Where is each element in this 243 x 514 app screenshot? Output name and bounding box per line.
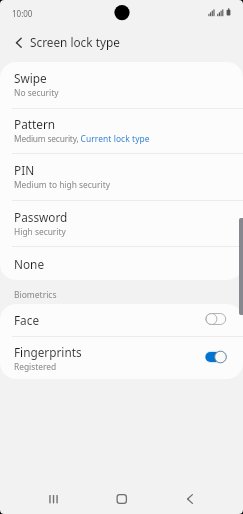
button[interactable]: PIN — [0, 154, 243, 200]
staticText: Medium security, Current lock type — [14, 133, 150, 144]
button[interactable]: Recent apps — [40, 486, 68, 514]
staticText: Pattern — [14, 116, 56, 132]
staticText: 10:00 — [12, 8, 33, 19]
button[interactable]: Swipe — [0, 62, 243, 108]
staticText: Screen lock type — [30, 34, 120, 50]
button[interactable]: None — [0, 247, 243, 280]
button[interactable]: Back — [176, 486, 204, 514]
staticText: Registered — [14, 361, 57, 372]
button[interactable]: Pattern — [0, 109, 243, 153]
staticText: Face — [14, 312, 40, 328]
button[interactable]: Navigate up — [7, 31, 31, 55]
button[interactable]: Home — [108, 486, 136, 514]
staticText: High security — [14, 226, 66, 237]
button[interactable]: Face — [0, 304, 243, 336]
staticText: Swipe — [14, 70, 47, 86]
staticText: No security — [14, 87, 59, 98]
staticText: Biometrics — [14, 289, 57, 301]
button[interactable]: Fingerprints — [0, 337, 243, 379]
staticText: Password — [14, 209, 68, 225]
staticText: Medium to high security — [14, 179, 110, 190]
staticText: Fingerprints — [14, 344, 82, 360]
staticText: PIN — [14, 162, 35, 178]
button[interactable]: Password — [0, 201, 243, 246]
staticText: None — [14, 256, 45, 272]
